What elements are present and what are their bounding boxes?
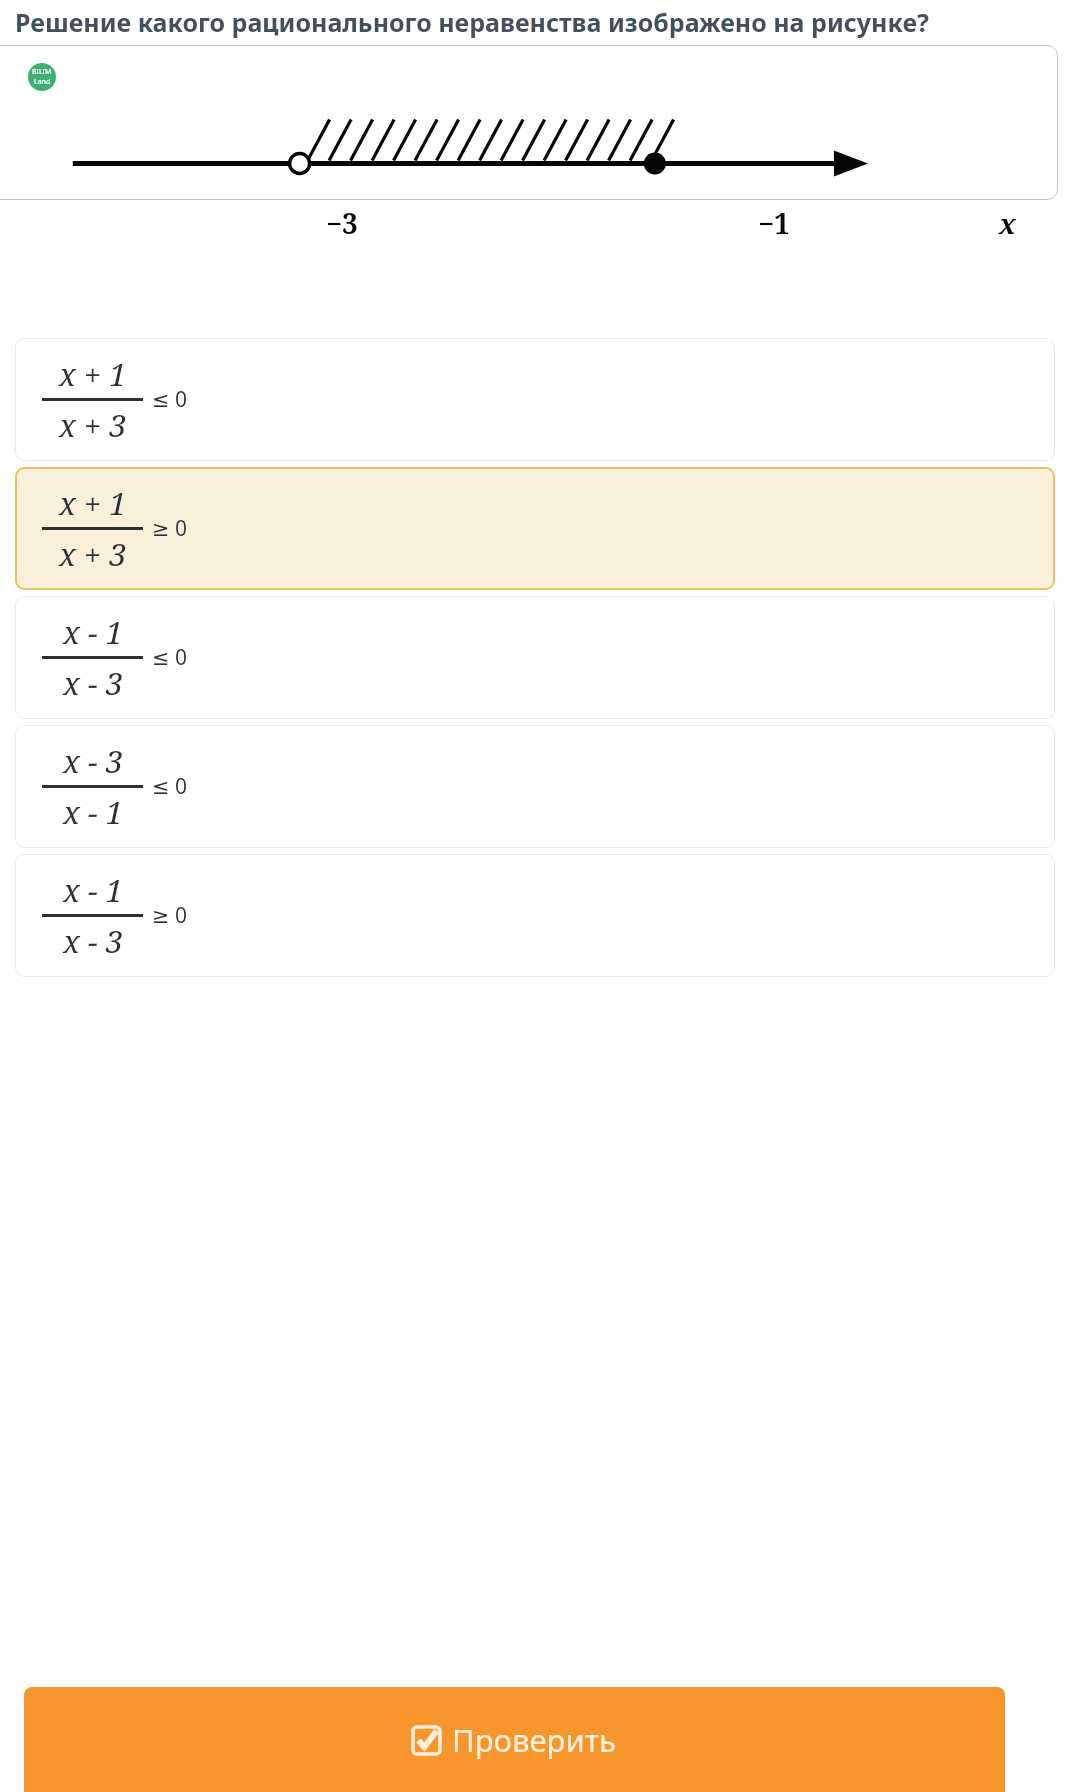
staticText: x − 3 bbox=[63, 740, 123, 782]
button[interactable]: x + 1 bbox=[15, 338, 1055, 461]
staticText: Land bbox=[34, 77, 51, 87]
staticText: x bbox=[999, 204, 1016, 242]
staticText: x + 3 bbox=[59, 533, 127, 575]
staticText: x − 1 bbox=[63, 611, 123, 653]
staticText: ≥ 0 bbox=[152, 901, 188, 930]
staticText: ≤ 0 bbox=[152, 385, 188, 414]
staticText: x + 3 bbox=[59, 404, 127, 446]
staticText: x − 1 bbox=[63, 791, 123, 833]
staticText: −3 bbox=[326, 204, 358, 242]
staticText: −1 bbox=[758, 204, 790, 242]
button[interactable]: x − 1 bbox=[15, 854, 1055, 977]
staticText: ≤ 0 bbox=[152, 772, 188, 801]
button[interactable]: Check answer bbox=[24, 1687, 1005, 1792]
staticText: Решение какого рационального неравенства… bbox=[15, 5, 929, 39]
staticText: x + 1 bbox=[59, 353, 127, 395]
staticText: Проверить bbox=[452, 1719, 616, 1761]
staticText: x − 3 bbox=[63, 920, 123, 962]
staticText: ≥ 0 bbox=[152, 514, 188, 543]
staticText: x + 1 bbox=[59, 482, 127, 524]
staticText: x − 3 bbox=[63, 662, 123, 704]
button[interactable]: x − 1 bbox=[15, 596, 1055, 719]
staticText: x − 1 bbox=[63, 869, 123, 911]
staticText: ≤ 0 bbox=[152, 643, 188, 672]
staticText: BILIM bbox=[32, 67, 52, 77]
button[interactable]: x − 3 bbox=[15, 725, 1055, 848]
other: Check answer bbox=[413, 1727, 440, 1754]
button[interactable]: x + 1 bbox=[15, 467, 1055, 590]
